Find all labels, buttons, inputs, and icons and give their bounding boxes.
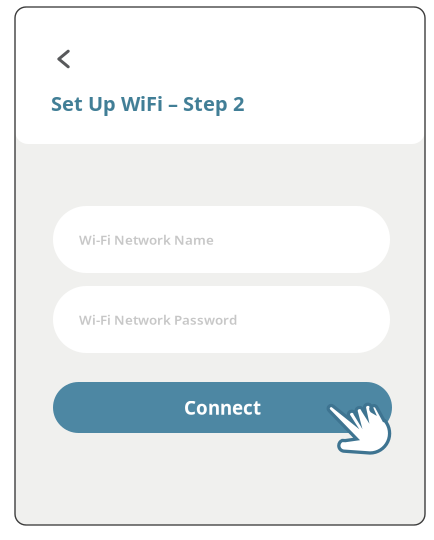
staticText: Wi-Fi Network Name [79,231,214,248]
button[interactable]: Back [49,45,79,75]
staticText: Wi-Fi Network Password [79,311,237,328]
staticText: Connect [184,395,261,420]
button[interactable]: Connect [53,382,392,433]
staticText: Set Up WiFi – Step 2 [51,90,244,117]
